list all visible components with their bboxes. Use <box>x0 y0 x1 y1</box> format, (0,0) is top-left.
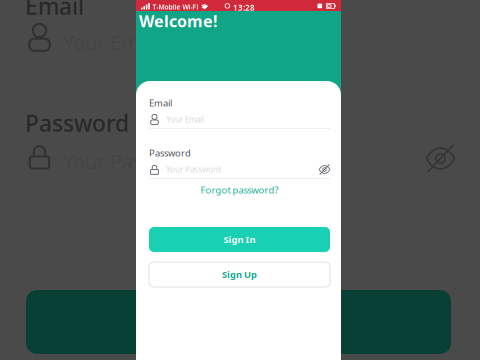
staticText: Your Email <box>166 114 204 125</box>
button[interactable]: Sign Up <box>149 262 330 287</box>
staticText: 13:28 <box>233 2 255 13</box>
button[interactable]: Forgot password? <box>149 185 330 195</box>
staticText: T-Mobile Wi-Fi <box>152 2 198 11</box>
staticText: Your Password <box>63 148 201 175</box>
staticText: Your Email <box>63 29 161 56</box>
button[interactable]: Sign In <box>149 227 330 252</box>
staticText: Your Password <box>166 164 221 175</box>
staticText: Password <box>149 147 191 159</box>
staticText: Email <box>25 0 84 21</box>
staticText: Email <box>149 97 172 109</box>
staticText: Password <box>25 108 129 138</box>
staticText: Forgot password? <box>200 184 278 196</box>
staticText: Sign In <box>223 233 255 246</box>
staticText: Welcome! <box>139 10 218 32</box>
button[interactable]: Show password <box>315 164 330 175</box>
staticText: Sign Up <box>222 268 257 281</box>
